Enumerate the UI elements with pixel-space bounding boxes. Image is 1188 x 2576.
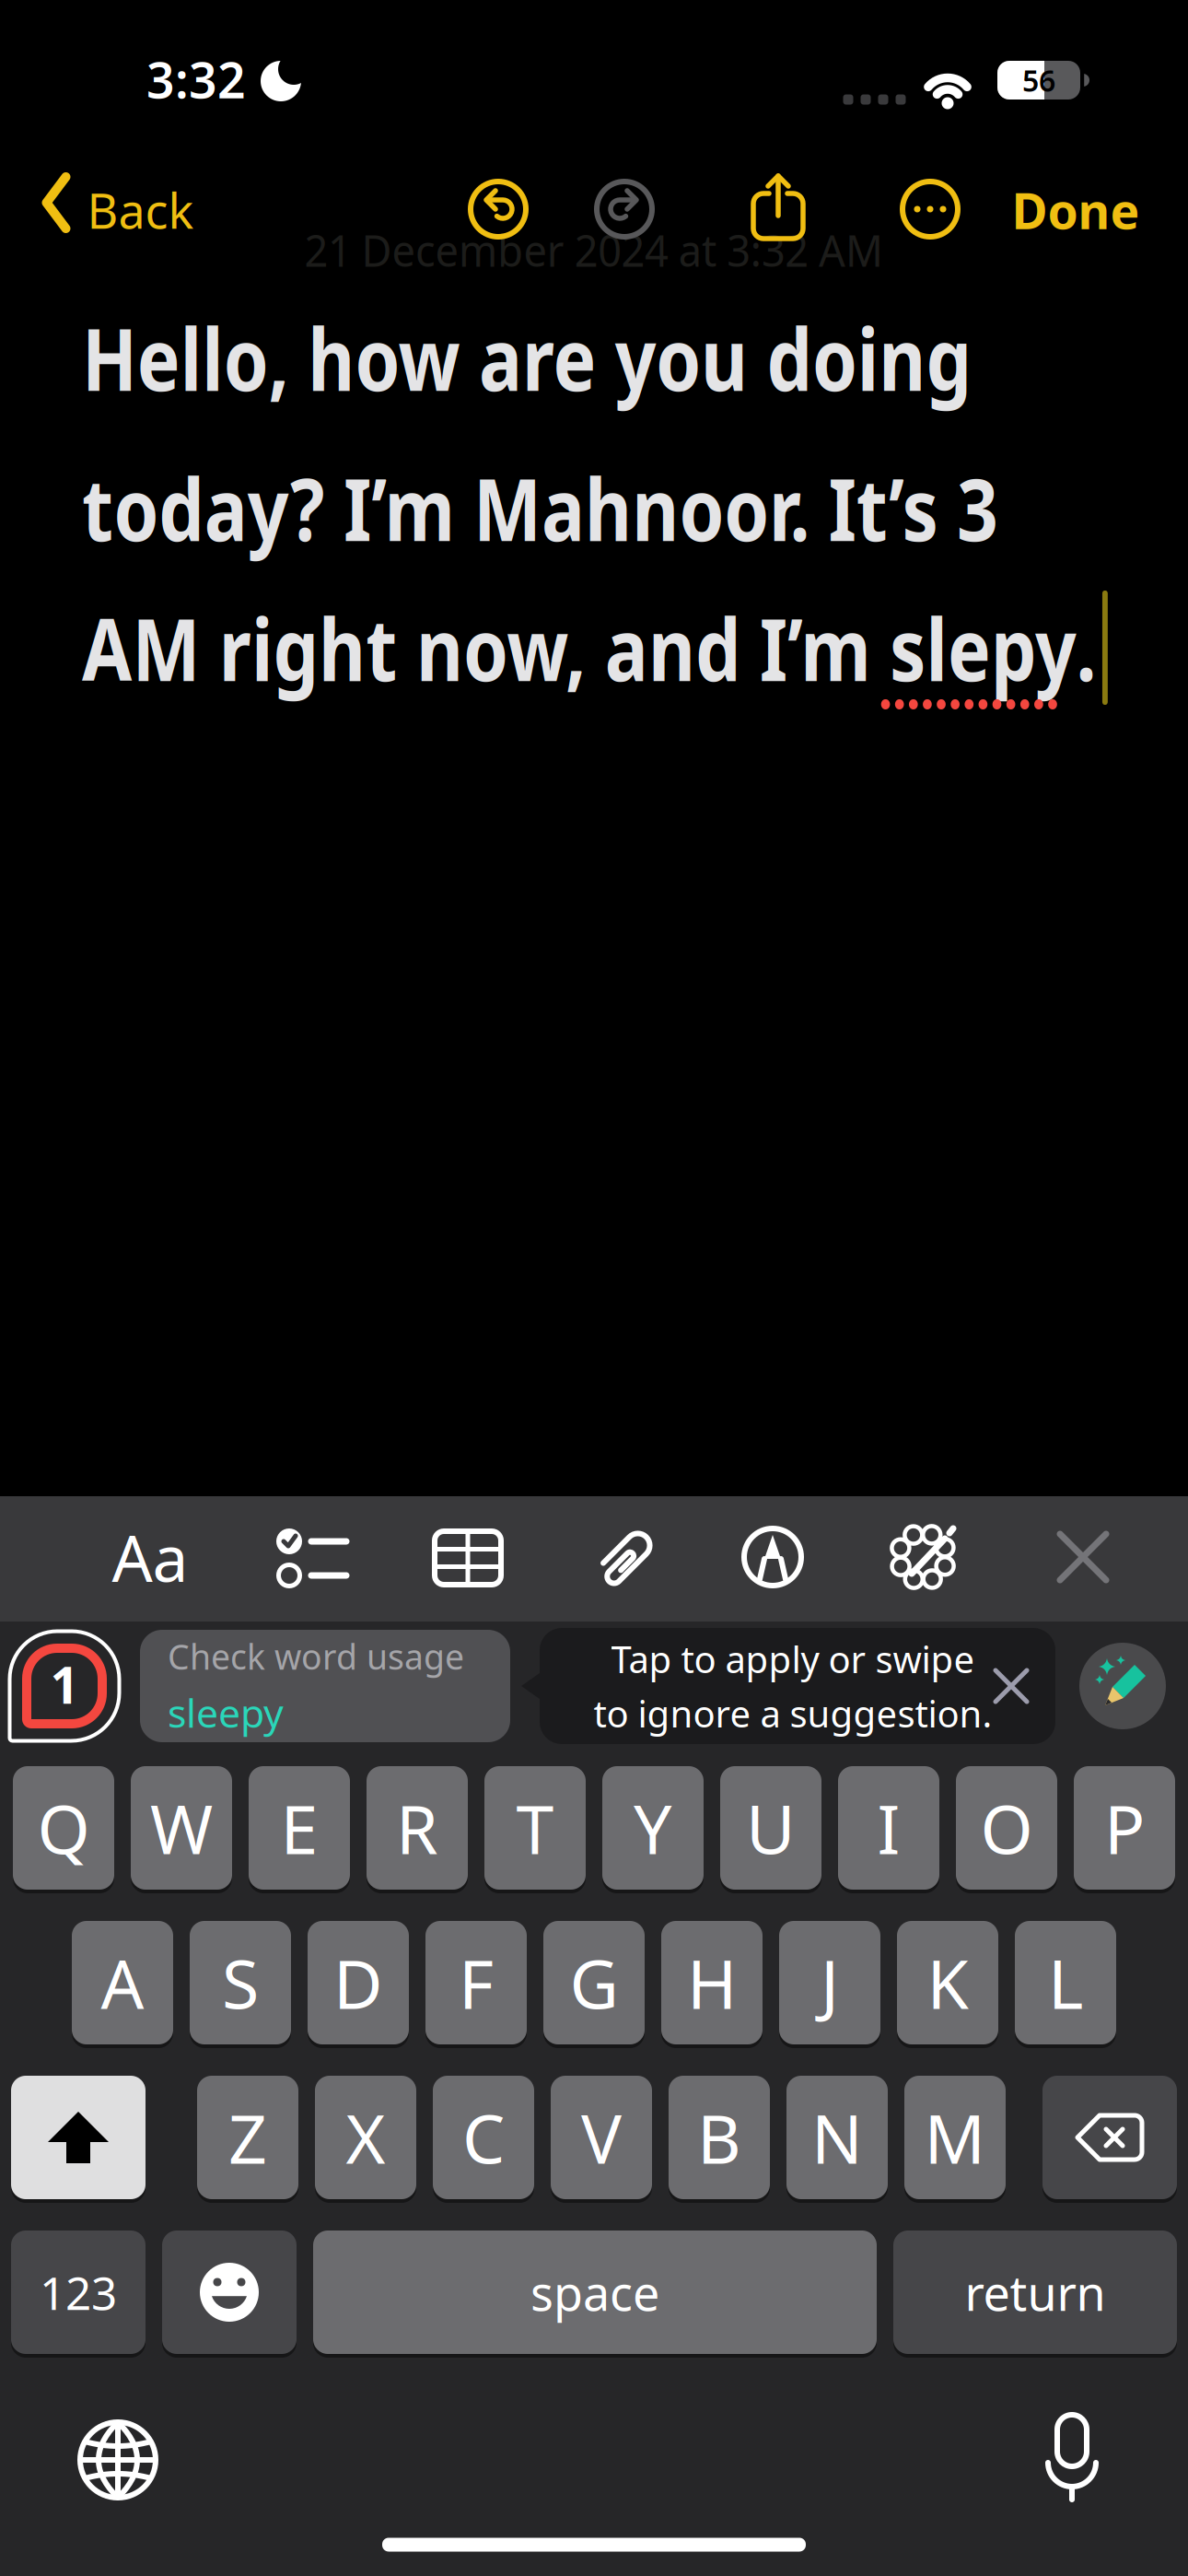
staticText: U [746, 1783, 796, 1873]
button[interactable]: W [131, 1764, 232, 1891]
button[interactable]: Attach [604, 1525, 643, 1595]
staticText: G [570, 1938, 618, 2028]
staticText: Hello, how are you doing [82, 300, 1141, 415]
button[interactable]: V [551, 2074, 652, 2201]
staticText: P [1104, 1783, 1145, 1873]
button[interactable]: J [779, 1919, 880, 2046]
staticText: slepy [1043, 591, 1188, 705]
staticText: Z [228, 2093, 267, 2182]
button[interactable]: D [308, 1919, 409, 2046]
button[interactable]: Format [112, 1515, 188, 1599]
staticText: 56 [1022, 61, 1055, 100]
staticText: N [811, 2093, 863, 2182]
button[interactable]: I [838, 1764, 939, 1891]
staticText: E [280, 1783, 318, 1873]
button[interactable]: T [484, 1764, 586, 1891]
button[interactable]: More [900, 179, 961, 240]
button[interactable]: Check word usage [140, 1630, 510, 1742]
button[interactable]: A [72, 1919, 173, 2046]
button[interactable]: N [786, 2074, 888, 2201]
button[interactable]: P [1074, 1764, 1175, 1891]
button[interactable]: Checklist [276, 1528, 348, 1588]
staticText: J [821, 1938, 839, 2028]
staticText: 123 [40, 2262, 117, 2322]
staticText: Q [37, 1783, 90, 1873]
button[interactable]: Markup [741, 1526, 804, 1588]
button[interactable]: Share [751, 173, 806, 241]
button[interactable]: Done [1012, 177, 1140, 243]
button[interactable]: Shift [11, 2074, 146, 2201]
staticText: today? I’m Mahnoor. It’s 3 [82, 451, 1172, 565]
button[interactable]: Writing Tools [890, 1522, 960, 1590]
button[interactable]: F [425, 1919, 527, 2046]
staticText: H [687, 1938, 737, 2028]
staticText: 3:32 [146, 47, 246, 112]
staticText: 21 December 2024 at 3:32 AM [286, 220, 902, 279]
button[interactable]: return [893, 2229, 1177, 2356]
button[interactable]: X [315, 2074, 416, 2201]
staticText: sleepy [168, 1686, 284, 1739]
staticText: Aa [112, 1515, 188, 1599]
staticText: I [877, 1783, 900, 1873]
button[interactable]: Emoji [162, 2229, 297, 2356]
button[interactable]: R [367, 1764, 468, 1891]
button[interactable]: Dismiss keyboard [1057, 1531, 1109, 1583]
staticText: C [462, 2093, 505, 2182]
button[interactable]: U [720, 1764, 821, 1891]
staticText: space [530, 2260, 659, 2324]
button[interactable]: Redo [594, 179, 655, 240]
staticText: to ignore a suggestion. [594, 1689, 992, 1738]
staticText: A [101, 1938, 144, 2028]
staticText: Done [1012, 177, 1140, 243]
button[interactable]: G [543, 1919, 645, 2046]
staticText: L [1048, 1938, 1083, 2028]
button[interactable]: E [249, 1764, 350, 1891]
button[interactable]: Z [197, 2074, 298, 2201]
staticText: W [150, 1783, 213, 1873]
staticText: S [222, 1938, 259, 2028]
staticText: D [333, 1938, 383, 2028]
button[interactable]: Delete [1042, 2074, 1177, 2201]
button[interactable]: S [190, 1919, 291, 2046]
staticText: AM right now, and I’m [82, 591, 1043, 705]
staticText: R [396, 1783, 438, 1873]
staticText: X [346, 2093, 385, 2182]
button[interactable]: B [669, 2074, 770, 2201]
staticText: Y [634, 1783, 672, 1873]
staticText: Check word usage [168, 1633, 464, 1679]
button[interactable]: Undo [468, 179, 529, 240]
button[interactable]: H [661, 1919, 763, 2046]
button[interactable]: Dictate [1043, 2415, 1101, 2501]
button[interactable]: Q [13, 1764, 114, 1891]
staticText: O [980, 1783, 1033, 1873]
staticText: return [965, 2260, 1106, 2324]
staticText: K [927, 1938, 968, 2028]
button[interactable]: 123 [11, 2229, 146, 2356]
button[interactable]: O [956, 1764, 1057, 1891]
button[interactable]: Dismiss [996, 1670, 1027, 1702]
staticText: T [516, 1783, 554, 1873]
button[interactable]: M [904, 2074, 1006, 2201]
button[interactable]: 1 suggestion [9, 1631, 120, 1741]
button[interactable]: Next keyboard [77, 2419, 158, 2500]
staticText: Back [87, 178, 194, 242]
button[interactable]: Table [434, 1530, 502, 1586]
button[interactable]: K [897, 1919, 998, 2046]
staticText: Tap to apply or swipe [611, 1634, 975, 1683]
button[interactable]: C [433, 2074, 534, 2201]
button[interactable]: Grammarly [1079, 1643, 1166, 1729]
button[interactable]: Y [602, 1764, 704, 1891]
staticText: B [697, 2093, 741, 2182]
staticText: F [459, 1938, 494, 2028]
button[interactable]: Back [42, 178, 194, 242]
staticText: V [581, 2093, 622, 2182]
button[interactable]: L [1015, 1919, 1116, 2046]
staticText: 1 [50, 1651, 79, 1718]
button[interactable]: space [313, 2229, 877, 2356]
staticText: M [924, 2093, 986, 2182]
